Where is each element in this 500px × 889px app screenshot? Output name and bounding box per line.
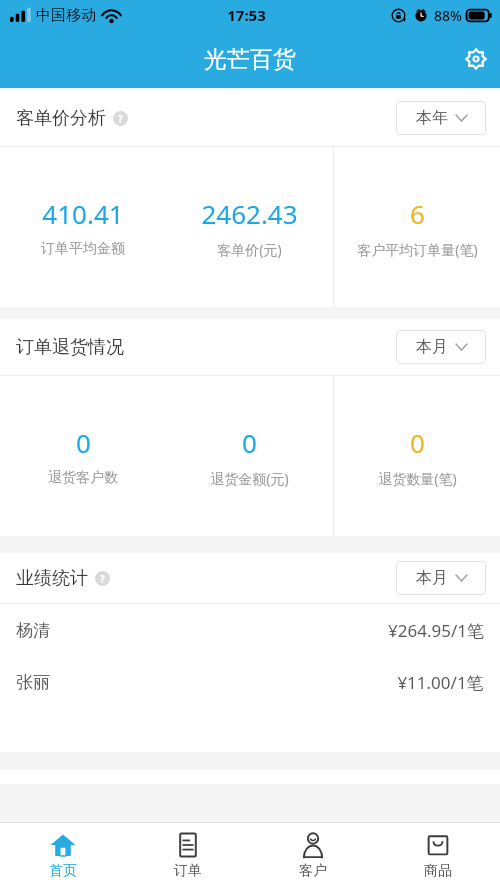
button[interactable]: 2462.43	[166, 147, 333, 307]
staticText: 商品	[424, 862, 452, 880]
staticText: 订单平均金额	[41, 240, 125, 258]
staticText: 首页	[49, 862, 77, 880]
staticText: 退货金额(元)	[210, 469, 289, 488]
staticText: 2462.43	[201, 196, 298, 231]
button[interactable]: 6	[334, 147, 500, 307]
staticText: 客户平均订单量(笔)	[357, 240, 478, 259]
button[interactable]: 张丽	[0, 656, 500, 708]
staticText: 光芒百货	[204, 45, 296, 74]
staticText: 客单价分析	[16, 107, 106, 130]
staticText: 17:53	[227, 5, 266, 25]
staticText: 订单退货情况	[16, 336, 124, 359]
staticText: 88%	[434, 6, 462, 25]
staticText: 退货数量(笔)	[378, 469, 457, 488]
button[interactable]: 本月	[396, 330, 486, 364]
staticText: 中国移动	[36, 6, 96, 25]
button[interactable]: 410.41	[0, 147, 166, 307]
staticText: 客户	[299, 862, 327, 880]
staticText: 410.41	[42, 196, 124, 231]
button[interactable]: 首页	[0, 823, 125, 889]
button[interactable]: 商品	[375, 823, 500, 889]
button[interactable]: 杨清	[0, 604, 500, 656]
staticText: ¥11.00/1笔	[397, 671, 484, 694]
button[interactable]: 本年	[396, 101, 486, 135]
staticText: 本月	[416, 568, 448, 588]
button[interactable]: 0	[166, 376, 333, 536]
staticText: 本年	[416, 108, 448, 128]
staticText: ?	[100, 572, 105, 586]
staticText: 退货客户数	[48, 469, 118, 487]
staticText: 0	[76, 425, 91, 460]
staticText: 订单	[174, 862, 202, 880]
staticText: ¥264.95/1笔	[388, 619, 484, 642]
staticText: 客单价(元)	[217, 240, 282, 259]
staticText: 本月	[416, 337, 448, 357]
button[interactable]: 客户	[250, 823, 375, 889]
staticText: 0	[242, 425, 257, 460]
button[interactable]: Settings	[452, 35, 500, 83]
staticText: 张丽	[16, 672, 50, 693]
staticText: ?	[118, 112, 123, 126]
button[interactable]: 本月	[396, 561, 486, 595]
staticText: 0	[410, 425, 425, 460]
button[interactable]: 0	[0, 376, 166, 536]
button[interactable]: 订单	[125, 823, 250, 889]
staticText: 杨清	[16, 620, 50, 641]
staticText: 业绩统计	[16, 567, 88, 590]
staticText: 6	[410, 196, 425, 231]
button[interactable]: 0	[334, 376, 500, 536]
